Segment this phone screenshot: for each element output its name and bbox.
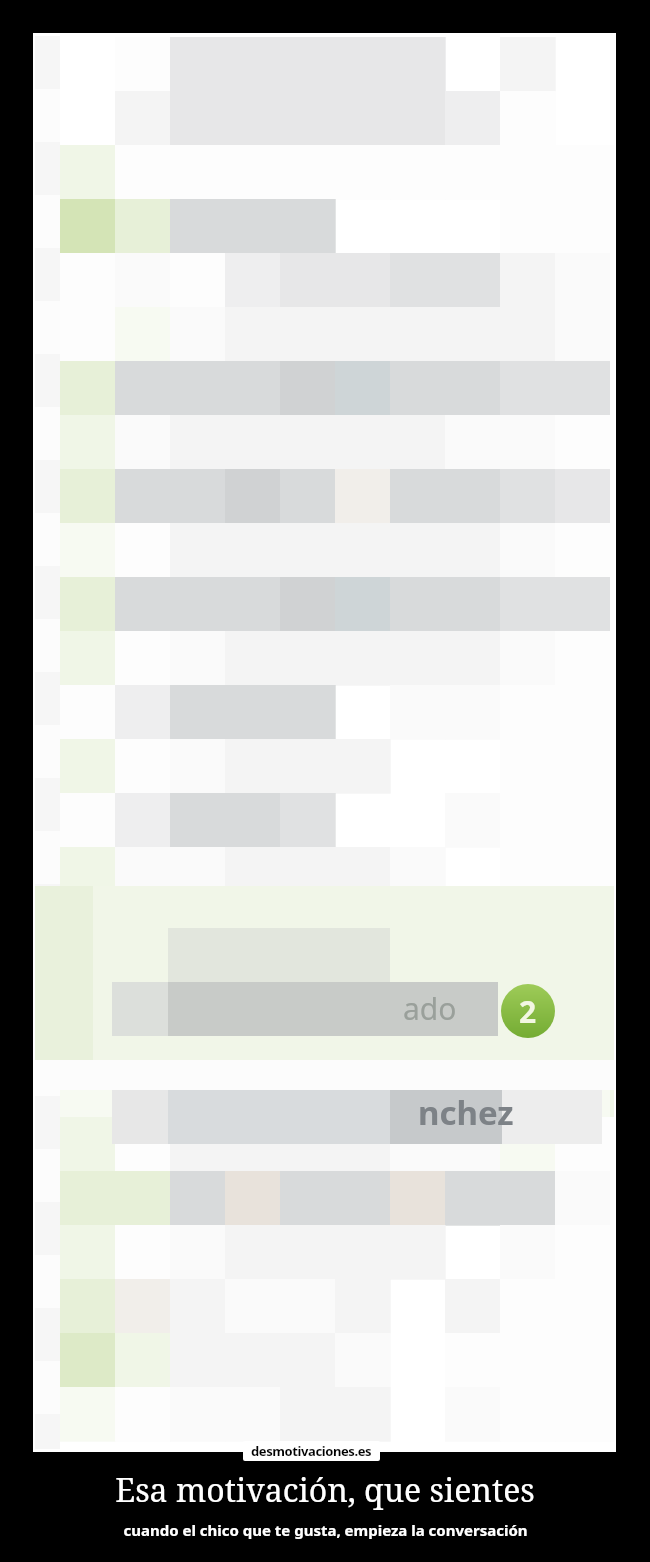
staticText: 2 (519, 991, 537, 1032)
staticText: Esa motivación, que sientes (115, 1468, 535, 1512)
staticText: ado (403, 988, 457, 1029)
button[interactable]: 2 mensajes sin leer (501, 984, 555, 1038)
staticText: desmotivaciones.es (251, 1442, 372, 1460)
staticText: cuando el chico que te gusta, empieza la… (123, 1520, 528, 1540)
button[interactable]: desmotivaciones.es (243, 1441, 380, 1461)
staticText: nchez (418, 1090, 514, 1135)
